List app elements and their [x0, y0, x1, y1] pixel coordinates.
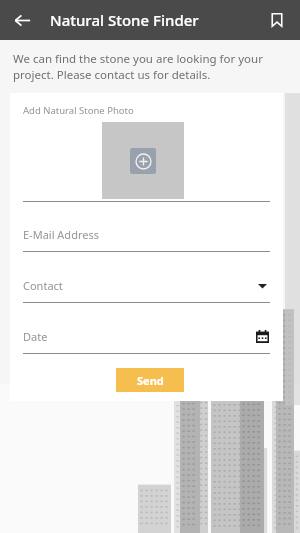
button[interactable]: Bookmark: [263, 6, 291, 34]
button[interactable]: Add photo: [102, 122, 184, 199]
button[interactable]: Contact: [23, 277, 270, 293]
staticText: We can find the stone you are looking fo…: [13, 51, 286, 82]
staticText: Add Natural Stone Photo: [23, 104, 134, 117]
button[interactable]: Back: [6, 4, 38, 36]
other: Open contact options: [254, 277, 270, 293]
other: Pick date: [254, 328, 270, 344]
button[interactable]: Send: [116, 368, 184, 392]
button[interactable]: E-Mail Address: [23, 227, 270, 242]
staticText: Contact: [23, 278, 254, 293]
staticText: Send: [137, 373, 164, 388]
staticText: Date: [23, 329, 254, 344]
staticText: Natural Stone Finder: [50, 10, 199, 30]
staticText: E-Mail Address: [23, 227, 270, 242]
button[interactable]: Date: [23, 328, 270, 344]
